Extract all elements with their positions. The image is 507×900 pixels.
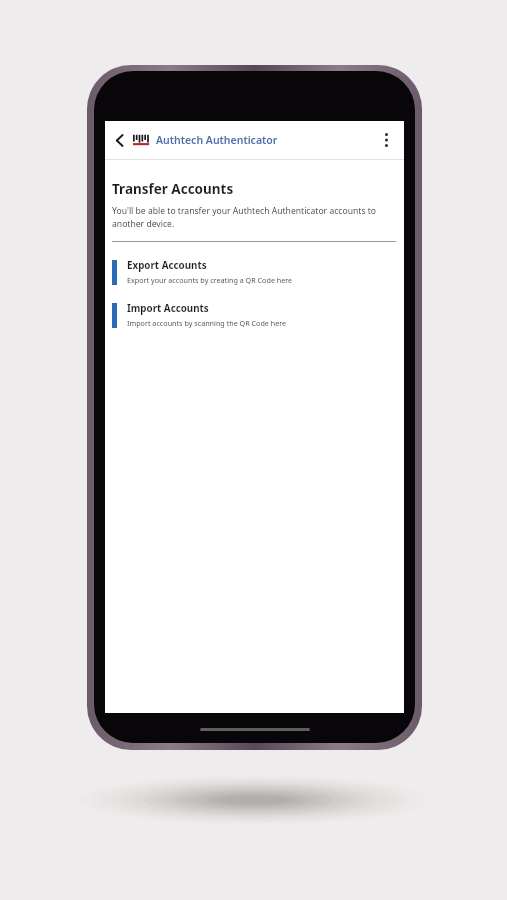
staticText: Import Accounts [127, 302, 209, 315]
staticText: Import accounts by scanning the QR Code … [127, 318, 287, 328]
staticText: You'll be able to transfer your Authtech… [112, 205, 395, 229]
staticText: Transfer Accounts [112, 180, 234, 198]
button[interactable]: Import Accounts [105, 302, 404, 328]
staticText: Export your accounts by creating a QR Co… [127, 275, 293, 285]
button[interactable]: Back [109, 129, 131, 151]
staticText: Export Accounts [127, 259, 207, 272]
button[interactable]: Export Accounts [105, 259, 404, 285]
button[interactable]: More options [375, 129, 397, 151]
staticText: Authtech Authenticator [156, 133, 278, 147]
